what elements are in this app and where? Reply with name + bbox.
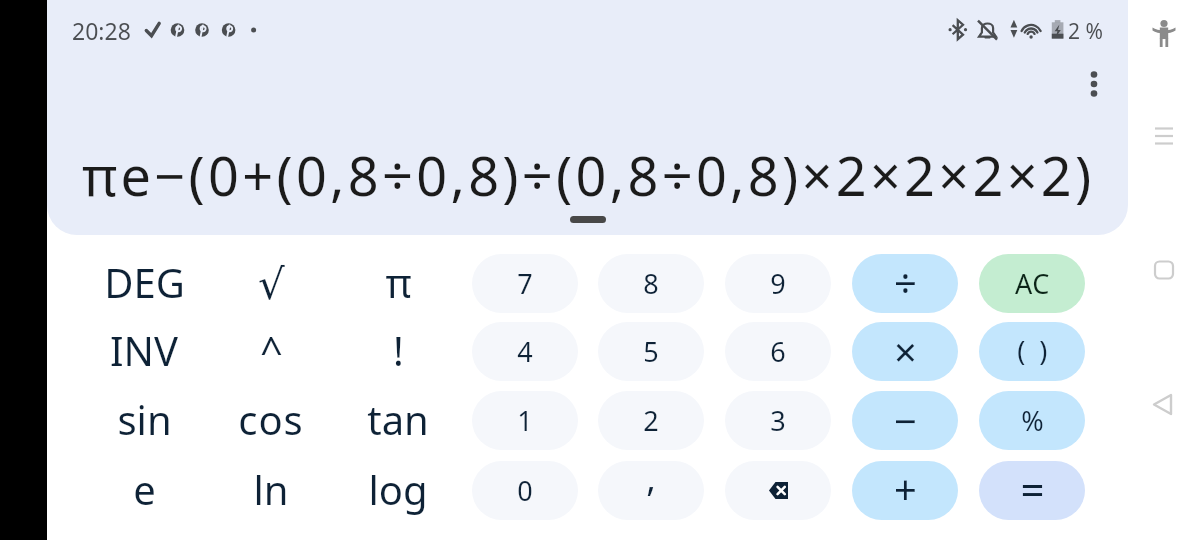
button[interactable]: √ xyxy=(218,254,324,313)
staticText: % xyxy=(1021,402,1044,439)
button[interactable]: ! xyxy=(345,322,451,381)
button[interactable]: DEG xyxy=(91,254,197,313)
button[interactable]: Accessibility xyxy=(1144,13,1184,53)
button[interactable]: Subtract xyxy=(852,391,958,450)
staticText: = xyxy=(1020,461,1045,517)
button[interactable]: ^ xyxy=(218,322,324,381)
button[interactable]: Back xyxy=(1144,385,1184,425)
button[interactable]: 1 xyxy=(472,391,578,450)
staticText: 2 xyxy=(643,402,659,439)
staticText: log xyxy=(368,462,428,516)
button[interactable]: 9 xyxy=(725,254,831,313)
button[interactable]: sin xyxy=(91,391,197,450)
staticText: 3 xyxy=(770,402,786,439)
button[interactable]: 3 xyxy=(725,391,831,450)
staticText: tan xyxy=(367,392,429,446)
staticText: 6 xyxy=(770,333,786,370)
button[interactable]: Equals xyxy=(979,461,1085,520)
button[interactable]: INV xyxy=(91,322,197,381)
button[interactable]: 0 xyxy=(472,461,578,520)
staticText: ln xyxy=(253,462,289,516)
staticText: 9 xyxy=(770,265,786,302)
button[interactable]: 4 xyxy=(472,322,578,381)
staticText: π xyxy=(385,255,412,309)
staticText: + xyxy=(894,461,917,515)
staticText: cos xyxy=(238,392,304,446)
button[interactable]: Decimal separator xyxy=(598,461,704,520)
button[interactable]: Percent xyxy=(979,391,1085,450)
button[interactable]: log xyxy=(345,461,451,520)
staticText: e xyxy=(133,462,156,516)
button[interactable]: Backspace xyxy=(725,461,831,520)
staticText: INV xyxy=(110,323,178,377)
staticText: ( ) xyxy=(1017,332,1051,369)
staticText: , xyxy=(646,461,656,502)
staticText: 4 xyxy=(517,333,533,370)
staticText: 0 xyxy=(517,472,533,509)
button[interactable]: 6 xyxy=(725,322,831,381)
staticText: AC xyxy=(1015,265,1050,302)
staticText: 2 % xyxy=(1068,17,1103,46)
staticText: − xyxy=(894,393,917,447)
button[interactable]: cos xyxy=(218,391,324,450)
button[interactable]: e xyxy=(91,461,197,520)
button[interactable]: Multiply xyxy=(852,322,958,381)
button[interactable]: π xyxy=(345,254,451,313)
staticText: 7 xyxy=(517,265,533,302)
staticText: × xyxy=(894,324,917,378)
staticText: πe−(0+(0,8÷0,8)÷(0,8÷0,8)×2×2×2×2) xyxy=(82,138,1095,212)
staticText: 5 xyxy=(643,333,659,370)
other: Backspace xyxy=(768,482,789,499)
staticText: ! xyxy=(393,323,404,377)
staticText: √ xyxy=(258,260,285,309)
staticText: ^ xyxy=(260,323,283,377)
button[interactable]: ln xyxy=(218,461,324,520)
button[interactable]: 8 xyxy=(598,254,704,313)
button[interactable]: AC xyxy=(979,254,1085,313)
button[interactable]: ( ) xyxy=(979,322,1085,381)
staticText: sin xyxy=(117,392,172,446)
button[interactable]: Add xyxy=(852,461,958,520)
button[interactable]: tan xyxy=(345,391,451,450)
button[interactable]: More options xyxy=(1074,64,1114,104)
button[interactable]: Menu xyxy=(1144,116,1184,156)
staticText: 1 xyxy=(517,402,533,439)
staticText: DEG xyxy=(104,255,185,309)
button[interactable]: 2 xyxy=(598,391,704,450)
staticText: ÷ xyxy=(894,255,917,309)
button[interactable]: 5 xyxy=(598,322,704,381)
staticText: 20:28 xyxy=(72,15,131,46)
button[interactable]: Divide xyxy=(852,254,958,313)
staticText: 8 xyxy=(643,265,659,302)
button[interactable]: 7 xyxy=(472,254,578,313)
button[interactable]: Home xyxy=(1144,250,1184,290)
